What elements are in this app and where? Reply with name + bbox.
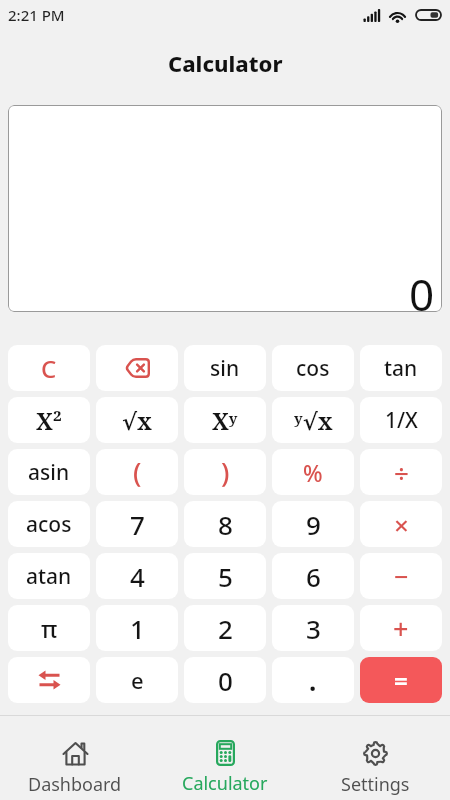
staticText: 5 (218, 559, 233, 594)
staticText: 2 (218, 611, 233, 646)
staticText: atan (26, 562, 72, 591)
button[interactable]: . (272, 657, 354, 703)
staticText: 4 (130, 559, 145, 594)
button[interactable]: 7 (96, 501, 178, 547)
button[interactable]: cos (272, 345, 354, 391)
staticText: ( (133, 454, 142, 491)
button[interactable]: Dashboard (0, 716, 150, 800)
staticText: Xʸ (212, 405, 238, 436)
staticText: cos (296, 354, 330, 383)
button[interactable]: 3 (272, 605, 354, 651)
staticText: + (393, 610, 409, 647)
button[interactable]: 1/X (360, 397, 442, 443)
button[interactable]: 0 (184, 657, 266, 703)
staticText: asin (28, 458, 70, 487)
button[interactable]: ʸ√x (272, 397, 354, 443)
staticText: Dashboard (28, 772, 122, 797)
staticText: 3 (306, 611, 321, 646)
staticText: acos (26, 510, 72, 539)
staticText: √x (122, 405, 152, 436)
button[interactable]: acos (8, 501, 90, 547)
staticText: e (131, 665, 144, 695)
button[interactable]: atan (8, 553, 90, 599)
staticText: 8 (218, 507, 233, 542)
button[interactable]: asin (8, 449, 90, 495)
button[interactable] (8, 657, 90, 703)
staticText: 0 (409, 264, 435, 312)
staticText: ʸ√x (294, 405, 333, 436)
staticText: 1/X (385, 406, 418, 435)
staticText: 0 (218, 663, 233, 698)
staticText: sin (210, 354, 240, 383)
button[interactable]: 6 (272, 553, 354, 599)
button[interactable]: √x (96, 397, 178, 443)
staticText: ÷ (394, 455, 409, 490)
staticText: % (303, 457, 323, 488)
button[interactable]: e (96, 657, 178, 703)
staticText: tan (384, 354, 418, 383)
button[interactable]: × (360, 501, 442, 547)
button[interactable]: Xʸ (184, 397, 266, 443)
staticText: Settings (341, 772, 410, 797)
staticText: 6 (306, 559, 321, 594)
button[interactable]: ) (184, 449, 266, 495)
button[interactable]: 8 (184, 501, 266, 547)
button[interactable]: π (8, 605, 90, 651)
button[interactable] (96, 345, 178, 391)
staticText: C (41, 352, 57, 385)
button[interactable]: X² (8, 397, 90, 443)
staticText: 9 (306, 507, 321, 542)
button[interactable]: C (8, 345, 90, 391)
button[interactable]: − (360, 553, 442, 599)
button[interactable]: 5 (184, 553, 266, 599)
button[interactable]: 9 (272, 501, 354, 547)
button[interactable]: ( (96, 449, 178, 495)
staticText: π (41, 612, 58, 645)
button[interactable]: + (360, 605, 442, 651)
staticText: Calculator (168, 48, 283, 78)
button[interactable]: 1 (96, 605, 178, 651)
button[interactable]: 4 (96, 553, 178, 599)
button[interactable]: % (272, 449, 354, 495)
staticText: 7 (130, 507, 145, 542)
button[interactable]: sin (184, 345, 266, 391)
staticText: Calculator (182, 771, 268, 796)
staticText: 1 (130, 611, 145, 646)
staticText: X² (36, 405, 63, 436)
button[interactable]: Calculator (150, 716, 300, 800)
button[interactable]: = (360, 657, 442, 703)
button[interactable]: tan (360, 345, 442, 391)
staticText: ) (221, 454, 230, 491)
button[interactable]: ÷ (360, 449, 442, 495)
button[interactable]: 2 (184, 605, 266, 651)
staticText: × (394, 507, 409, 542)
staticText: = (394, 664, 408, 697)
staticText: − (394, 559, 409, 593)
staticText: . (309, 663, 317, 698)
staticText: 2:21 PM (8, 5, 65, 25)
button[interactable]: Settings (300, 716, 450, 800)
